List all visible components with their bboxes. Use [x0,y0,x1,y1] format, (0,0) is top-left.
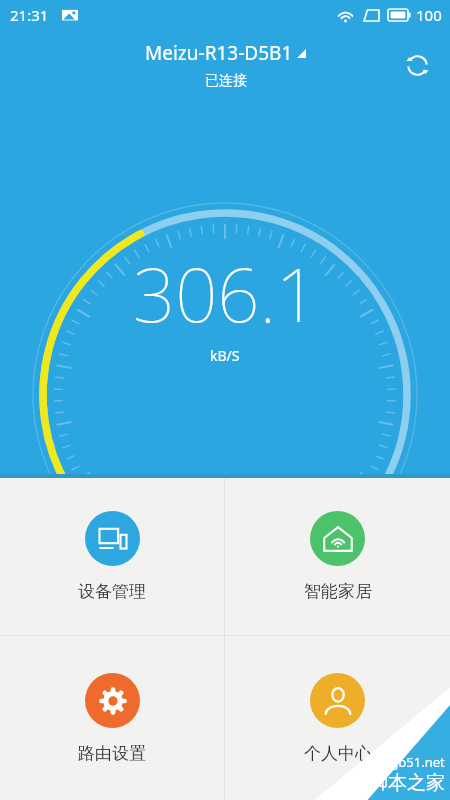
staticText: 脚本之家 [369,771,445,795]
staticText: 个人中心 [304,743,372,764]
button[interactable]: Meizu-R13-D5B1 [145,40,306,90]
staticText: 21:31 [10,5,49,25]
staticText: 智能家居 [304,581,372,602]
staticText: Meizu-R13-D5B1 [145,40,293,66]
staticText: kB/S [210,346,240,365]
button[interactable]: 路由设置 [0,636,224,800]
button[interactable]: 设备管理 [0,478,224,635]
button[interactable]: Refresh [396,44,438,86]
button[interactable]: 智能家居 [225,478,450,635]
staticText: 设备管理 [78,581,146,602]
staticText: jb51.net [395,753,445,771]
staticText: 306.1 [133,243,318,344]
button[interactable]: 个人中心 [225,636,450,800]
staticText: 100 [416,5,442,25]
staticText: 已连接 [205,72,247,90]
staticText: 路由设置 [78,743,146,764]
